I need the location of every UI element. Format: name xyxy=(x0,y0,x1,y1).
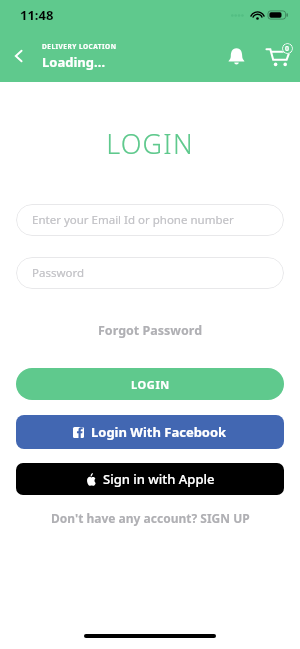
button[interactable]: Cart xyxy=(256,34,300,78)
button[interactable]: Forgot Password xyxy=(92,320,209,341)
button[interactable]: Notifications xyxy=(216,36,256,76)
staticText: Forgot Password xyxy=(98,322,203,339)
staticText: DELIVERY LOCATION xyxy=(42,42,117,51)
button[interactable]: DELIVERY LOCATION xyxy=(38,42,216,71)
button[interactable]: LOGIN xyxy=(16,368,284,400)
button[interactable]: Don't have any account? SIGN UP xyxy=(45,508,256,528)
staticText: Sign in with Apple xyxy=(103,470,215,488)
button[interactable]: Sign in with Apple xyxy=(16,463,284,495)
staticText: Loading… xyxy=(42,53,106,71)
button[interactable]: Password xyxy=(16,257,284,289)
staticText: LOGIN xyxy=(0,125,300,162)
staticText: 11:48 xyxy=(20,6,54,24)
staticText: Login With Facebook xyxy=(91,423,227,441)
staticText: Password xyxy=(32,265,85,281)
staticText: 0 xyxy=(285,44,290,54)
button[interactable]: Back xyxy=(0,34,38,78)
staticText: Don't have any account? SIGN UP xyxy=(51,510,250,526)
staticText: Enter your Email Id or phone number xyxy=(32,212,234,228)
staticText: LOGIN xyxy=(131,377,170,392)
button[interactable]: Login With Facebook xyxy=(16,415,284,449)
button[interactable]: Enter your Email Id or phone number xyxy=(16,204,284,236)
